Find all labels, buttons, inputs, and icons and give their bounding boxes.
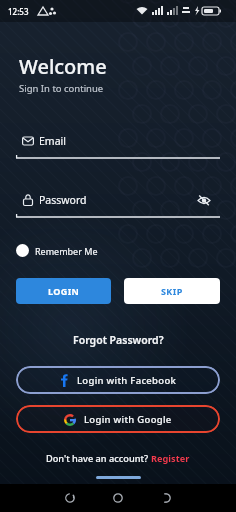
staticText: Forgot Password? <box>73 333 164 347</box>
button[interactable]: SKIP <box>124 278 220 304</box>
staticText: Remember Me <box>35 245 98 257</box>
button[interactable]: LOGIN <box>16 278 111 304</box>
button[interactable]: Login with Facebook <box>16 366 220 394</box>
button[interactable] <box>106 486 130 510</box>
button[interactable] <box>154 486 178 510</box>
staticText: Login with Google <box>84 413 172 426</box>
button[interactable]: Password <box>16 192 220 218</box>
staticText: Password <box>39 193 87 207</box>
staticText: Login with Facebook <box>77 374 177 387</box>
button[interactable]: Forgot Password? <box>73 333 164 347</box>
button[interactable]: Don't have an account? <box>16 452 220 465</box>
staticText: Sign In to continue <box>19 82 104 95</box>
button[interactable]: Email <box>16 134 220 159</box>
staticText: Register <box>151 452 190 465</box>
staticText: 12:53 <box>8 6 29 17</box>
button[interactable]: Remember Me <box>16 244 98 257</box>
button[interactable]: Login with Google <box>16 405 220 433</box>
staticText: SKIP <box>161 285 183 297</box>
button[interactable] <box>196 192 212 208</box>
staticText: Welcome <box>19 53 107 80</box>
button[interactable] <box>58 486 82 510</box>
staticText: LOGIN <box>48 285 80 297</box>
staticText: Don't have an account? <box>46 452 151 465</box>
staticText: Email <box>39 134 66 148</box>
